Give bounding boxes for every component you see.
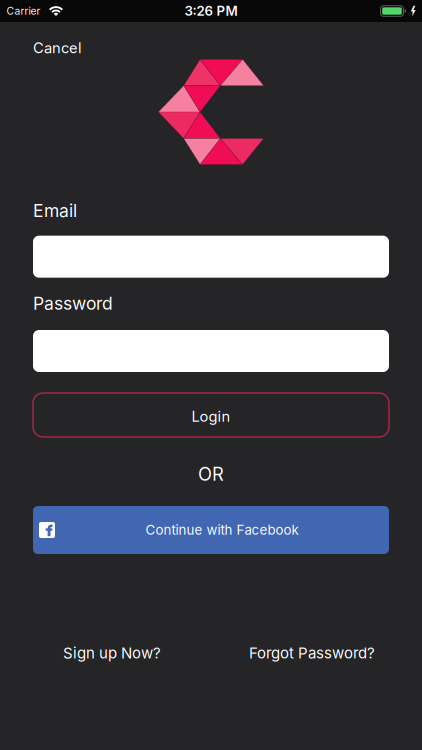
staticText: Email bbox=[33, 200, 77, 221]
staticText: Login bbox=[191, 408, 230, 425]
staticText: Continue with Facebook bbox=[145, 522, 298, 538]
staticText: Forgot Password? bbox=[249, 644, 375, 662]
staticText: Password bbox=[33, 293, 113, 314]
staticText: Carrier bbox=[6, 5, 40, 17]
button[interactable]: Continue with Facebook bbox=[33, 506, 389, 554]
staticText: OR bbox=[198, 463, 224, 485]
button[interactable]: Forgot Password? bbox=[249, 644, 375, 662]
button[interactable]: Sign up Now? bbox=[63, 644, 161, 662]
button[interactable]: Cancel bbox=[33, 39, 82, 57]
staticText: Cancel bbox=[33, 39, 82, 57]
staticText: 3:26 PM bbox=[184, 3, 237, 19]
staticText: Sign up Now? bbox=[63, 644, 161, 662]
button[interactable]: Login bbox=[33, 393, 389, 437]
